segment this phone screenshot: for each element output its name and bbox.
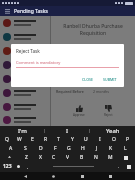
button[interactable] [0,114,50,126]
button[interactable]: Shift [0,153,19,162]
button[interactable]: Y [65,135,79,144]
button[interactable] [0,86,50,100]
staticText: K [109,145,113,152]
button[interactable]: A [3,144,18,153]
staticText: D [39,145,43,152]
button[interactable]: H [76,144,90,153]
button[interactable]: Home [49,172,57,180]
button[interactable]: E [26,135,39,144]
button[interactable]: C [47,153,61,162]
button[interactable]: , [23,162,32,171]
button[interactable]: 123 [0,162,14,171]
button[interactable] [0,58,50,72]
button[interactable]: I [93,135,107,144]
button[interactable] [0,16,50,30]
staticText: Reject Task [16,48,40,54]
staticText: Purchase [93,67,130,72]
button[interactable]: D [33,144,48,153]
staticText: PR001 [93,45,130,50]
button[interactable]: I [45,126,90,135]
staticText: Pending Tasks [14,8,48,15]
staticText: I [99,136,101,143]
button[interactable]: SUBMIT [101,76,119,83]
button[interactable]: Keyboard [106,172,114,180]
staticText: Approve [73,113,85,117]
staticText: S [24,145,27,152]
staticText: J [96,145,98,152]
button[interactable]: K [104,144,118,153]
staticText: P [126,136,130,143]
staticText: 123 [3,163,12,170]
button[interactable]: U [79,135,93,144]
staticText: . [118,164,120,169]
button[interactable]: Approve [71,103,87,119]
button[interactable]: W [13,135,26,144]
staticText: C [52,154,56,161]
staticText: O [112,136,116,143]
staticText: Yeah [106,127,120,135]
staticText: V [66,154,70,161]
staticText: A [9,145,13,152]
button[interactable] [0,100,50,114]
staticText: F [54,145,57,152]
button[interactable]: J [90,144,104,153]
staticText: Ranbell Dhurba Purchase Requisition [56,23,130,37]
button[interactable] [0,30,50,44]
button[interactable]: Q [0,135,13,144]
button[interactable]: Backspace [117,153,135,162]
staticText: U [84,136,88,143]
button[interactable]: N [89,153,103,162]
staticText: N [94,154,98,161]
button[interactable]: Recents [78,172,86,180]
staticText: Required Before [56,89,93,94]
staticText: Q [5,136,9,143]
staticText: Ranbell Dhurba [93,56,130,61]
staticText: Y [71,136,74,143]
staticText: T [57,136,60,143]
staticText: I [66,127,69,135]
button[interactable]: Reject [102,103,115,119]
button[interactable]: M [103,153,117,162]
staticText: SUBMIT [103,77,117,82]
button[interactable]: T [52,135,65,144]
button[interactable]: Space [32,162,114,171]
button[interactable]: F [48,144,62,153]
staticText: L [124,145,127,152]
staticText: I'm [18,127,27,135]
button[interactable] [0,44,50,58]
button[interactable]: P [121,135,135,144]
button[interactable]: Yeah [90,126,135,135]
staticText: E [31,136,34,143]
button[interactable]: Emoji [14,162,23,171]
staticText: H [81,145,85,152]
staticText: M [108,154,113,161]
button[interactable]: R [39,135,52,144]
staticText: Z [25,154,28,161]
staticText: Total Cost [56,78,93,83]
button[interactable]: Enter [123,162,135,171]
button[interactable]: CLOSE [80,76,95,83]
staticText: 2 months [93,89,130,94]
button[interactable]: . [114,162,123,171]
button[interactable]: V [61,153,75,162]
staticText: W [17,136,22,143]
staticText: G [67,145,71,152]
button[interactable]: G [62,144,76,153]
button[interactable]: Back [21,172,29,180]
staticText: Comment is mandatory [16,60,61,65]
staticText: B [80,154,84,161]
staticText: Department [56,67,93,72]
staticText: Reject [104,113,113,117]
button[interactable]: I'm [0,126,45,135]
button[interactable]: X [33,153,47,162]
button[interactable]: S [18,144,33,153]
button[interactable]: Z [19,153,33,162]
button[interactable] [0,72,50,86]
staticText: , [27,164,29,169]
button[interactable]: O [107,135,121,144]
button[interactable]: B [75,153,89,162]
button[interactable]: L [118,144,132,153]
staticText: 5000 [93,78,130,83]
button[interactable]: Open navigation menu [4,8,11,15]
